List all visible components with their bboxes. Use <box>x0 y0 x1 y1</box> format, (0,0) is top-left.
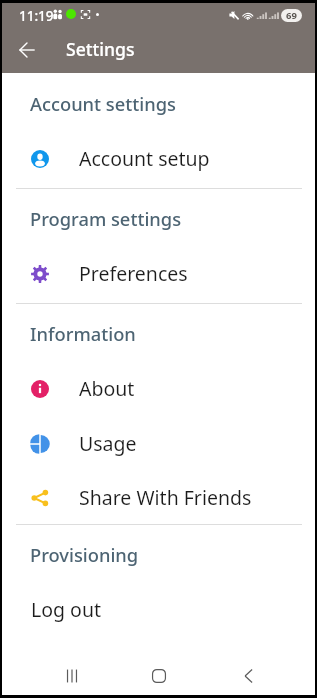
button[interactable]: Recents <box>50 656 94 695</box>
button[interactable]: Preferences <box>2 246 315 301</box>
button[interactable]: Share With Friends <box>2 470 315 525</box>
staticText: Information <box>30 321 136 346</box>
staticText: 69 <box>286 9 297 22</box>
button[interactable]: Back <box>227 656 271 695</box>
button[interactable]: Account setup <box>2 131 315 186</box>
staticText: Preferences <box>79 260 188 287</box>
staticText: 11:19 <box>19 7 54 23</box>
staticText: Program settings <box>30 206 182 231</box>
staticText: Account settings <box>30 91 176 116</box>
button[interactable]: Home <box>137 656 181 695</box>
staticText: Share With Friends <box>79 484 252 511</box>
staticText: Log out <box>31 596 101 623</box>
staticText: Account setup <box>79 145 210 172</box>
button[interactable]: About <box>2 361 315 416</box>
staticText: Provisioning <box>30 542 139 567</box>
button[interactable]: Log out <box>2 582 315 637</box>
staticText: Usage <box>79 430 137 457</box>
button[interactable]: Back <box>8 31 45 68</box>
staticText: Settings <box>66 37 135 61</box>
staticText: About <box>79 375 135 402</box>
button[interactable]: Usage <box>2 416 315 471</box>
